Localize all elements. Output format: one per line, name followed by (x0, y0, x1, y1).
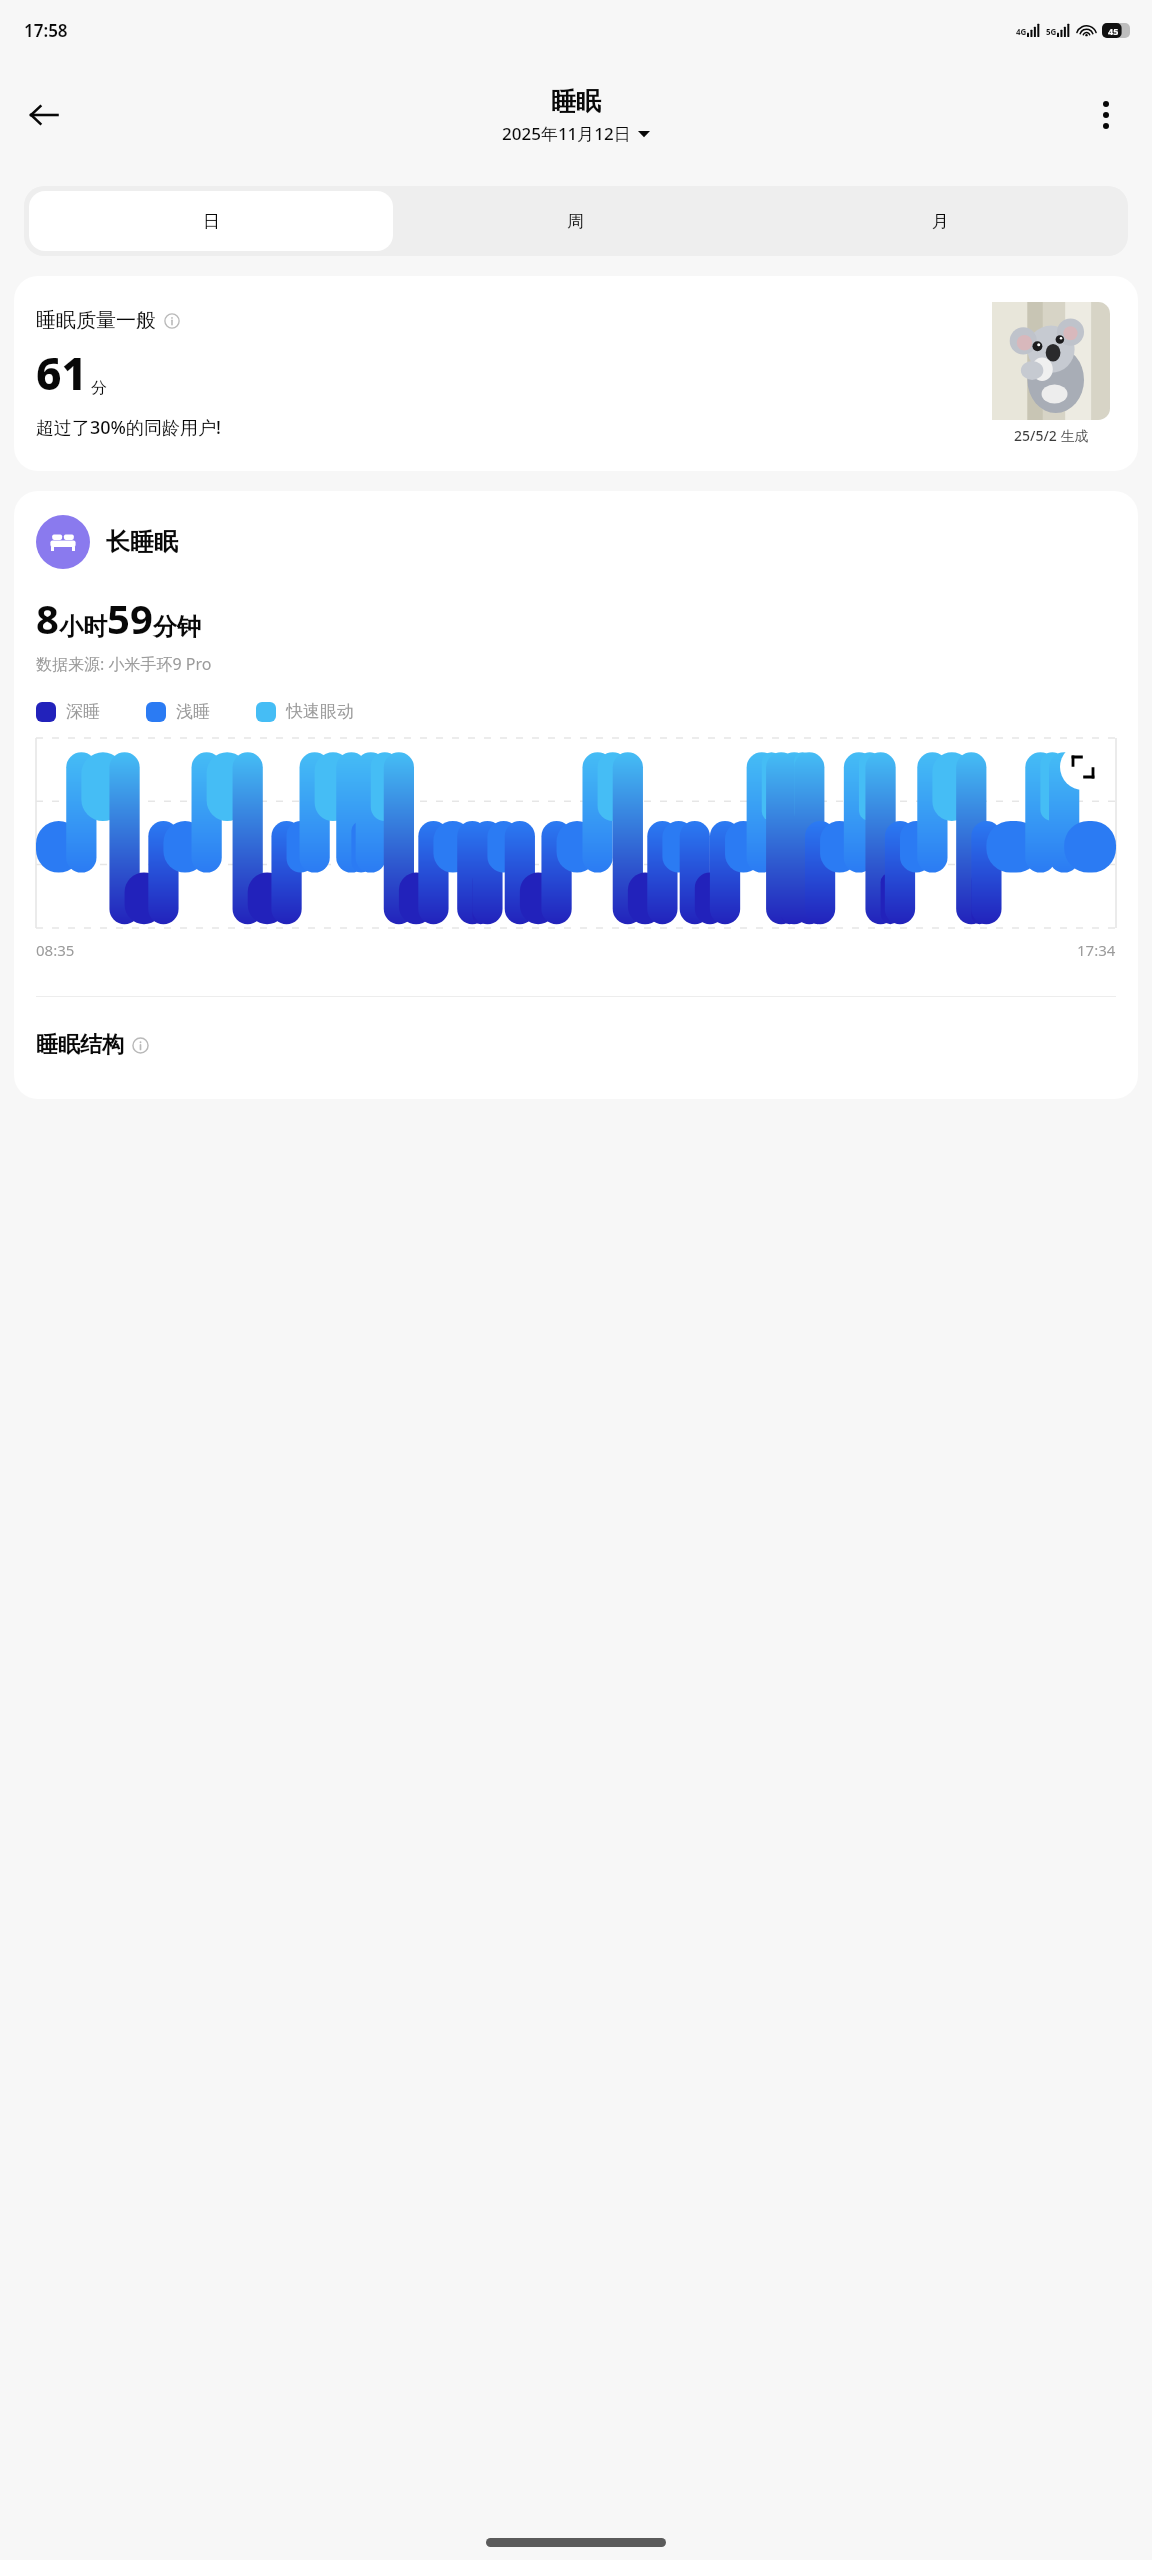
staticText: 小时 (59, 612, 107, 642)
button[interactable]: 周 (393, 191, 758, 251)
staticText: 5G (1046, 26, 1057, 37)
staticText: 周 (567, 211, 584, 232)
staticText: 日 (203, 211, 220, 232)
staticText: 61 (36, 343, 87, 403)
staticText: 2025年11月12日 (502, 122, 631, 145)
staticText: 45 (1108, 25, 1119, 37)
staticText: 长睡眠 (106, 527, 178, 557)
staticText: 睡眠 (551, 86, 601, 117)
button[interactable]: 月 (758, 191, 1123, 251)
staticText: 17:58 (24, 19, 68, 42)
button[interactable]: More options (1078, 87, 1134, 143)
staticText: 深睡 (66, 701, 100, 722)
staticText: 25/5/2 生成 (1014, 426, 1089, 445)
button[interactable]: 快速眼动 (256, 701, 354, 722)
button[interactable]: 深睡 (36, 701, 100, 722)
button[interactable]: 睡眠结构 (36, 1031, 149, 1059)
staticText: 数据来源: 小米手环9 Pro (36, 653, 212, 675)
staticText: 超过了30%的同龄用户! (36, 415, 221, 440)
button[interactable]: Back (16, 87, 72, 143)
button[interactable]: 睡眠质量一般 (14, 276, 1138, 471)
staticText: 浅睡 (176, 701, 210, 722)
button[interactable]: Expand chart (1060, 744, 1106, 790)
staticText: 分钟 (153, 612, 201, 642)
staticText: 4G (1016, 26, 1027, 37)
button[interactable]: 浅睡 (146, 701, 210, 722)
staticText: 59 (107, 591, 153, 645)
staticText: 08:35 (36, 940, 75, 960)
button[interactable]: 长睡眠 (36, 515, 178, 569)
staticText: 分 (91, 378, 107, 398)
button[interactable]: 25/5/2 生成 (986, 296, 1116, 451)
button[interactable]: 2025年11月12日 (502, 122, 650, 145)
button[interactable]: 日 (29, 191, 393, 251)
staticText: 月 (932, 211, 949, 232)
staticText: 8 (36, 591, 59, 645)
staticText: 快速眼动 (286, 701, 354, 722)
staticText: 睡眠质量一般 (36, 308, 156, 333)
staticText: 17:34 (1077, 940, 1116, 960)
staticText: 睡眠结构 (36, 1031, 124, 1059)
